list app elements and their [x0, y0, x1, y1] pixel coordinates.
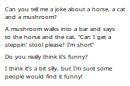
staticText: Do you really think it's funny? [5, 52, 88, 60]
staticText: A mushroom walks into a bar and says to … [5, 25, 115, 48]
staticText: I think it's a bit silly, but I'm sure s… [5, 64, 112, 80]
staticText: Can you tell me a joke about a horse, a … [5, 5, 125, 21]
